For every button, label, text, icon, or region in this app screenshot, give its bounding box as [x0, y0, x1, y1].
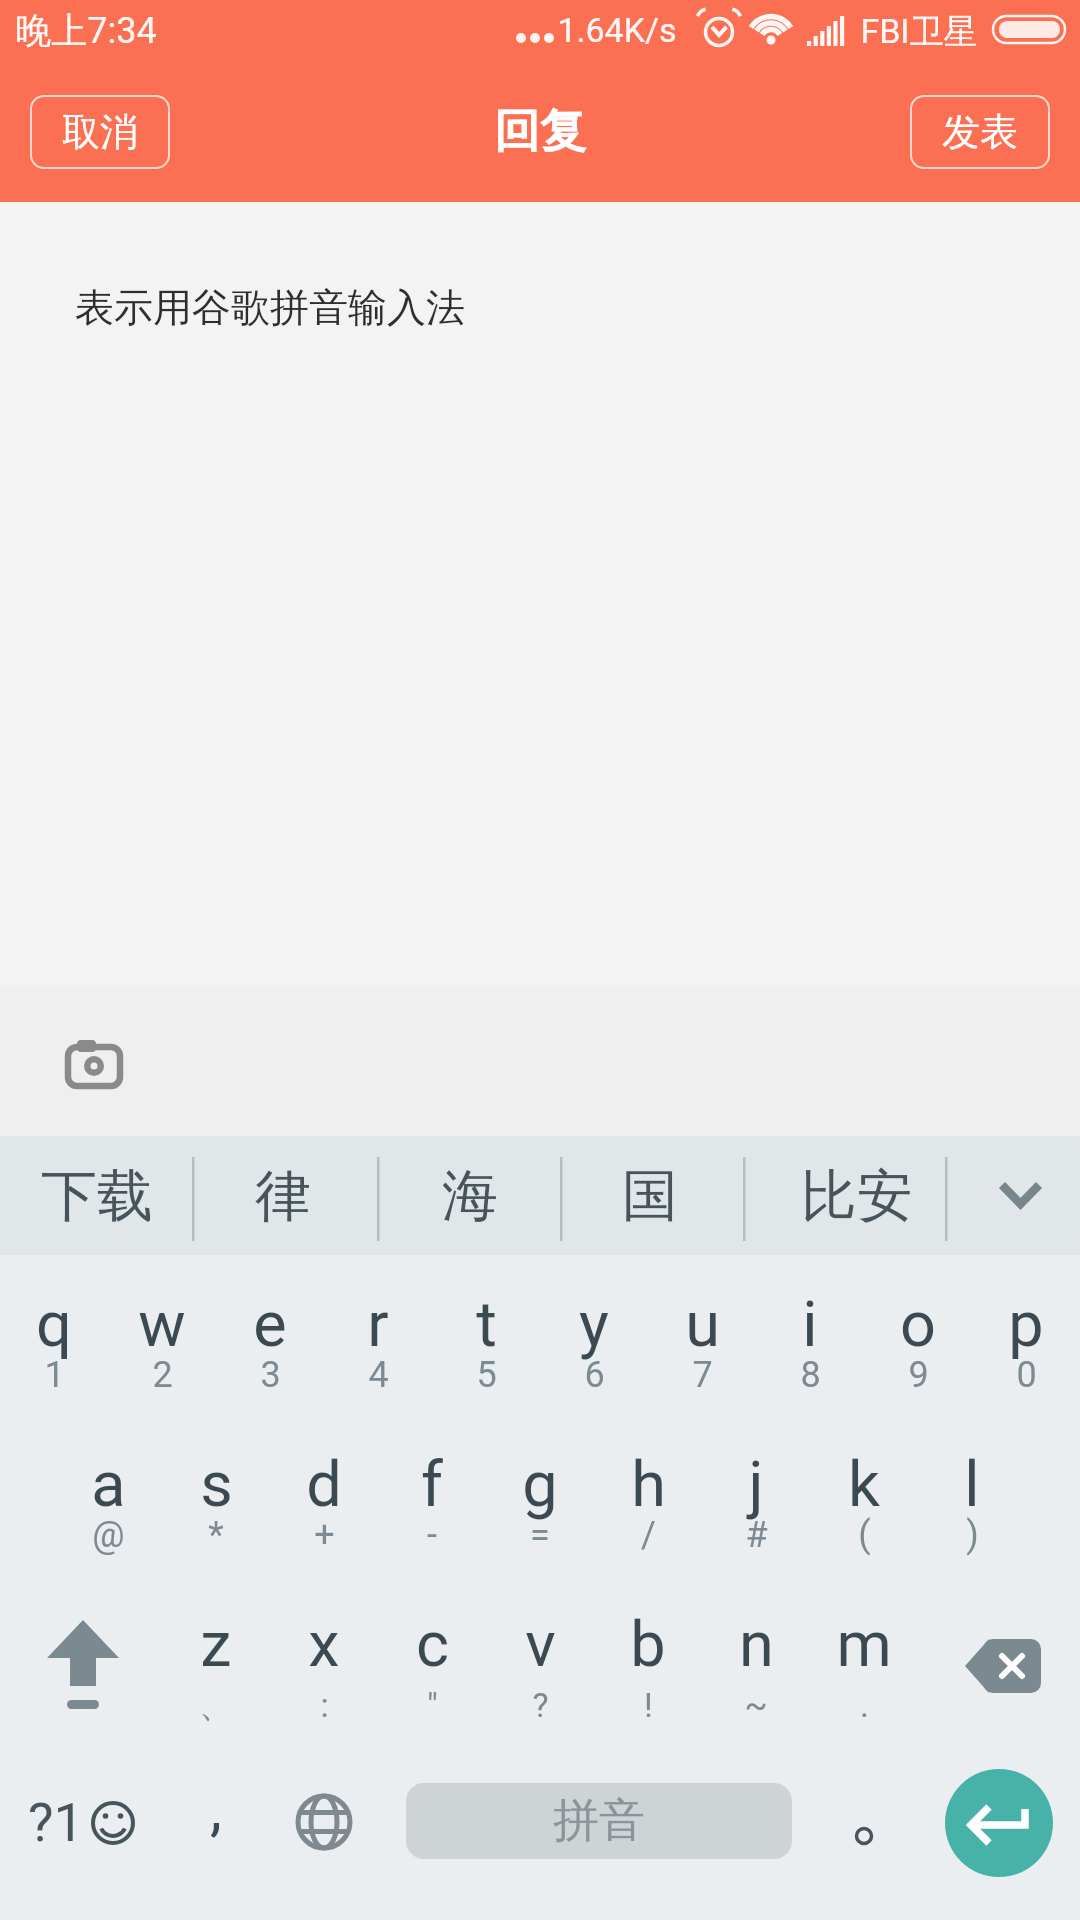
- staticText: 5: [476, 1354, 497, 1396]
- button[interactable]: x: [270, 1589, 378, 1701]
- button[interactable]: [945, 1769, 1053, 1877]
- staticText: :: [320, 1685, 329, 1725]
- button[interactable]: 比安: [777, 1151, 937, 1241]
- staticText: 律: [255, 1161, 311, 1232]
- button[interactable]: b: [594, 1589, 702, 1701]
- staticText: d: [306, 1448, 342, 1522]
- staticText: ~: [744, 1685, 768, 1725]
- button[interactable]: k: [810, 1429, 918, 1541]
- staticText: 3: [260, 1354, 281, 1396]
- button[interactable]: [940, 1606, 1066, 1726]
- button[interactable]: p: [972, 1269, 1080, 1381]
- staticText: 、: [199, 1684, 233, 1727]
- button[interactable]: a: [54, 1429, 162, 1541]
- button[interactable]: w: [108, 1269, 216, 1381]
- button[interactable]: 发表: [910, 95, 1050, 169]
- button[interactable]: [56, 1030, 132, 1096]
- staticText: b: [630, 1608, 666, 1682]
- staticText: o: [900, 1288, 936, 1362]
- staticText: 发表: [942, 108, 1018, 156]
- button[interactable]: 律: [203, 1151, 363, 1241]
- button[interactable]: [20, 1605, 146, 1725]
- staticText: 下载: [41, 1161, 153, 1232]
- staticText: .: [860, 1685, 869, 1725]
- staticText: l: [964, 1448, 980, 1522]
- staticText: =: [530, 1514, 550, 1556]
- staticText: g: [522, 1448, 558, 1522]
- staticText: ": [427, 1685, 438, 1725]
- staticText: p: [1008, 1288, 1044, 1362]
- button[interactable]: s: [162, 1429, 270, 1541]
- staticText: q: [36, 1288, 72, 1362]
- button[interactable]: h: [594, 1429, 702, 1541]
- staticText: 国: [622, 1161, 678, 1232]
- button[interactable]: j: [702, 1429, 810, 1541]
- button[interactable]: l: [918, 1429, 1026, 1541]
- staticText: r: [367, 1288, 389, 1362]
- staticText: @: [92, 1514, 125, 1556]
- button[interactable]: f: [378, 1429, 486, 1541]
- button[interactable]: ?1: [0, 1766, 162, 1878]
- button[interactable]: g: [486, 1429, 594, 1541]
- staticText: ,: [210, 1773, 222, 1843]
- staticText: f: [421, 1448, 443, 1522]
- staticText: 1.64K/s: [557, 10, 677, 50]
- staticText: #: [745, 1514, 768, 1556]
- staticText: (: [858, 1514, 871, 1556]
- staticText: h: [631, 1448, 666, 1522]
- staticText: ?1: [28, 1791, 84, 1854]
- button[interactable]: c: [378, 1589, 486, 1701]
- staticText: 取消: [62, 108, 138, 156]
- staticText: -: [427, 1514, 437, 1556]
- staticText: 0: [1016, 1354, 1037, 1396]
- staticText: x: [308, 1608, 340, 1682]
- staticText: 6: [584, 1354, 605, 1396]
- button[interactable]: [975, 1166, 1065, 1226]
- staticText: a: [91, 1448, 126, 1522]
- staticText: t: [476, 1288, 497, 1362]
- staticText: v: [525, 1608, 556, 1682]
- staticText: !: [644, 1685, 653, 1725]
- staticText: w: [138, 1288, 186, 1362]
- button[interactable]: t: [432, 1269, 540, 1381]
- button[interactable]: m: [810, 1589, 918, 1701]
- button[interactable]: r: [324, 1269, 432, 1381]
- button[interactable]: y: [540, 1269, 648, 1381]
- staticText: 9: [908, 1354, 929, 1396]
- button[interactable]: v: [486, 1589, 594, 1701]
- button[interactable]: 下载: [17, 1151, 177, 1241]
- button[interactable]: 国: [570, 1151, 730, 1241]
- staticText: k: [848, 1448, 880, 1522]
- staticText: 7: [692, 1354, 713, 1396]
- staticText: 1: [44, 1354, 65, 1396]
- button[interactable]: i: [756, 1269, 864, 1381]
- staticText: 比安: [801, 1161, 913, 1232]
- button[interactable]: 海: [390, 1151, 550, 1241]
- staticText: u: [685, 1288, 720, 1362]
- staticText: +: [314, 1514, 335, 1556]
- staticText: /: [641, 1514, 656, 1556]
- staticText: 晚上7:34: [15, 8, 157, 53]
- staticText: j: [748, 1448, 764, 1522]
- staticText: n: [739, 1608, 774, 1682]
- button[interactable]: n: [702, 1589, 810, 1701]
- button[interactable]: z: [162, 1589, 270, 1701]
- staticText: 海: [442, 1161, 498, 1232]
- button[interactable]: d: [270, 1429, 378, 1541]
- button[interactable]: o: [864, 1269, 972, 1381]
- staticText: 8: [800, 1354, 821, 1396]
- staticText: i: [802, 1288, 818, 1362]
- button[interactable]: 拼音: [406, 1783, 792, 1859]
- button[interactable]: e: [216, 1269, 324, 1381]
- button[interactable]: [792, 1766, 936, 1878]
- button[interactable]: 取消: [30, 95, 170, 169]
- staticText: 回复: [494, 103, 586, 161]
- staticText: m: [836, 1608, 892, 1682]
- button[interactable]: ,: [162, 1766, 270, 1878]
- staticText: z: [200, 1608, 232, 1682]
- staticText: 拼音: [553, 1792, 645, 1850]
- button[interactable]: [270, 1766, 378, 1878]
- button[interactable]: u: [648, 1269, 756, 1381]
- button[interactable]: q: [0, 1269, 108, 1381]
- staticText: s: [200, 1448, 233, 1522]
